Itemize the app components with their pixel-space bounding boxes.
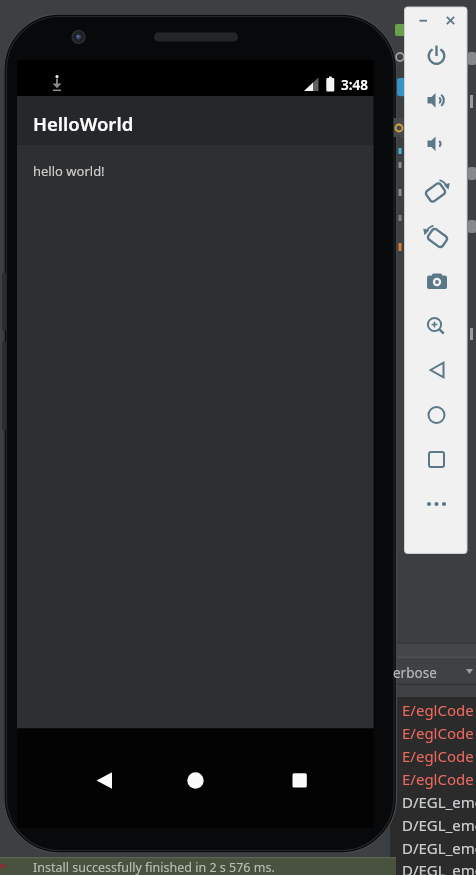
button[interactable]: [424, 312, 450, 338]
button[interactable]: [424, 446, 450, 472]
staticText: E/eglCode: [402, 723, 474, 743]
staticText: E/eglCode: [402, 700, 474, 720]
button[interactable]: [424, 43, 450, 69]
staticText: E/eglCode: [402, 769, 474, 789]
staticText: D/EGL_eme: [402, 838, 476, 858]
button[interactable]: [424, 131, 450, 157]
button[interactable]: [424, 177, 450, 203]
button[interactable]: [393, 658, 476, 684]
staticText: E/eglCode: [402, 746, 474, 766]
button[interactable]: [80, 756, 128, 804]
staticText: D/EGL_eme: [402, 860, 476, 875]
button[interactable]: [424, 402, 450, 428]
staticText: hello world!: [33, 162, 105, 180]
button[interactable]: [424, 223, 450, 249]
staticText: 3:48: [341, 76, 368, 94]
staticText: D/EGL_eme: [402, 815, 476, 835]
button[interactable]: [424, 491, 450, 517]
button[interactable]: [171, 756, 219, 804]
staticText: D/EGL_eme: [402, 792, 476, 812]
button[interactable]: [416, 13, 430, 27]
button[interactable]: [424, 357, 450, 383]
staticText: HelloWorld: [33, 111, 134, 136]
button[interactable]: [443, 13, 457, 27]
staticText: Install successfully finished in 2 s 576…: [33, 859, 275, 875]
button[interactable]: [424, 268, 450, 294]
button[interactable]: [424, 87, 450, 113]
staticText: erbose: [393, 664, 437, 682]
button[interactable]: [276, 756, 324, 804]
